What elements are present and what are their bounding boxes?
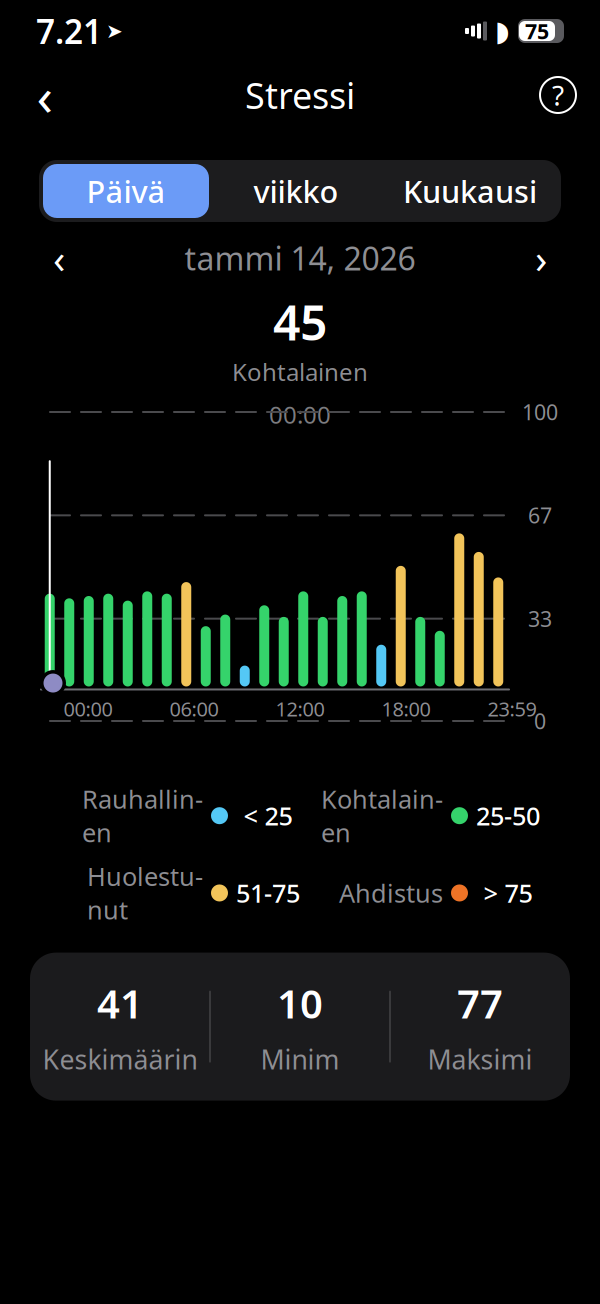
- staticText: ‹: [36, 60, 53, 130]
- staticText: 06:00: [169, 695, 218, 722]
- staticText: viikko: [253, 171, 338, 211]
- button[interactable]: Previous day: [34, 236, 84, 280]
- staticText: ‹: [53, 231, 65, 284]
- staticText: Minim: [260, 1041, 339, 1077]
- button[interactable]: Kuukausi: [383, 164, 557, 218]
- staticText: Päivä: [86, 171, 165, 211]
- staticText: Huolestunut: [87, 859, 203, 927]
- button[interactable]: Päivä: [43, 164, 209, 218]
- staticText: Kuukausi: [403, 171, 537, 211]
- staticText: Ahdistus: [339, 876, 443, 910]
- staticText: 00:00: [269, 399, 331, 430]
- staticText: ◗: [495, 15, 510, 47]
- staticText: 41: [97, 976, 143, 1029]
- staticText: Stressi: [245, 71, 355, 119]
- staticText: > 75: [483, 876, 532, 910]
- staticText: 18:00: [381, 695, 430, 722]
- button[interactable]: Back: [18, 68, 72, 122]
- button[interactable]: viikko: [209, 164, 383, 218]
- staticText: 23:59: [487, 695, 536, 722]
- staticText: Keskimäärin: [42, 1041, 197, 1077]
- button[interactable]: Next day: [516, 236, 566, 280]
- staticText: 77: [457, 976, 503, 1029]
- staticText: 33: [528, 604, 552, 633]
- staticText: 25-50: [476, 799, 540, 832]
- staticText: ›: [535, 231, 547, 284]
- staticText: 75: [525, 17, 549, 45]
- staticText: Kohtalainen: [232, 356, 368, 388]
- staticText: tammi 14, 2026: [184, 237, 415, 279]
- staticText: < 25: [243, 799, 292, 832]
- staticText: 67: [528, 501, 552, 529]
- staticText: 0: [534, 707, 546, 735]
- staticText: 100: [522, 398, 558, 426]
- staticText: ?: [552, 76, 564, 114]
- staticText: ➤: [106, 20, 123, 42]
- staticText: Maksimi: [427, 1041, 532, 1077]
- button[interactable]: Help: [534, 71, 582, 119]
- staticText: Rauhallinen: [82, 782, 203, 849]
- staticText: Kohtalainen: [321, 782, 443, 849]
- staticText: 7.21: [36, 9, 102, 53]
- staticText: 12:00: [275, 695, 324, 722]
- staticText: 10: [277, 976, 323, 1029]
- staticText: 45: [273, 290, 327, 354]
- staticText: 00:00: [63, 695, 112, 722]
- staticText: 51-75: [236, 876, 300, 910]
